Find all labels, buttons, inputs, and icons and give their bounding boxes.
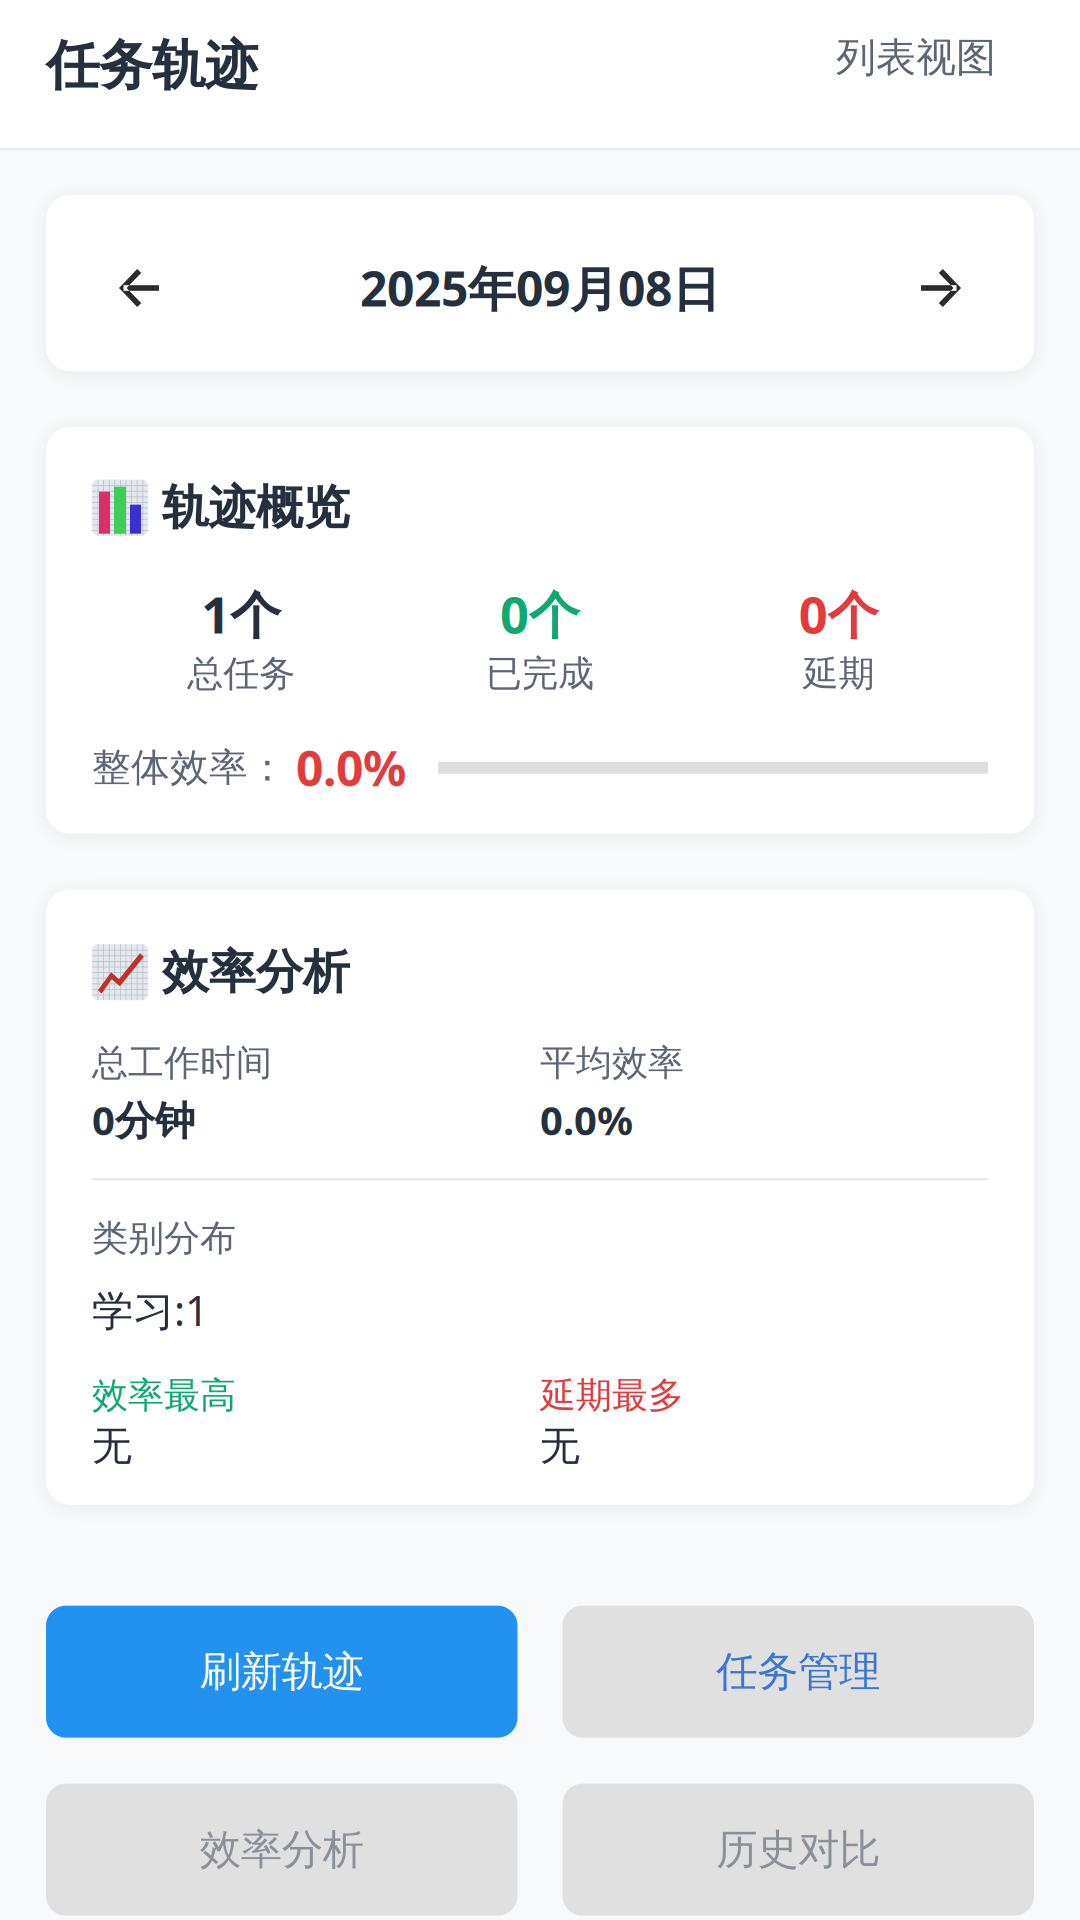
staticText: 延期最多 (540, 1373, 684, 1417)
staticText: 效率分析 (162, 944, 350, 1001)
button[interactable]: 历史对比 (562, 1784, 1034, 1916)
staticText: 0个 (799, 580, 879, 648)
button[interactable]: 后一天 (921, 269, 961, 307)
staticText: 任务轨迹 (46, 33, 258, 98)
button[interactable]: 任务管理 (562, 1606, 1034, 1738)
staticText: 总任务 (187, 652, 295, 696)
staticText: 1个 (201, 580, 281, 648)
staticText: 刷新轨迹 (200, 1646, 364, 1697)
button[interactable]: 效率分析 (46, 1784, 517, 1916)
staticText: 总工作时间 (92, 1041, 272, 1085)
staticText: 历史对比 (716, 1824, 880, 1875)
staticText: 轨迹概览 (162, 479, 350, 536)
staticText: 已完成 (486, 652, 594, 696)
staticText: 类别分布 (92, 1216, 236, 1260)
staticText: 无 (540, 1421, 580, 1471)
staticText: 无 (92, 1421, 132, 1471)
button[interactable]: 前一天 (119, 269, 159, 307)
staticText: 平均效率 (540, 1041, 684, 1085)
staticText: 延期 (803, 652, 875, 696)
staticText: 0分钟 (92, 1093, 195, 1146)
staticText: 列表视图 (836, 33, 996, 82)
staticText: 学习:1 (92, 1282, 209, 1337)
staticText: 2025年09月08日 (360, 256, 720, 320)
staticText: 效率最高 (92, 1373, 236, 1417)
staticText: 0.0% (540, 1093, 633, 1146)
staticText: 0个 (500, 580, 580, 648)
staticText: 整体效率： (92, 744, 287, 791)
staticText: 任务管理 (716, 1646, 880, 1697)
staticText: 0.0% (296, 736, 406, 799)
button[interactable]: 刷新轨迹 (46, 1606, 517, 1738)
button[interactable]: 列表视图 (812, 33, 996, 100)
staticText: 效率分析 (200, 1824, 364, 1875)
